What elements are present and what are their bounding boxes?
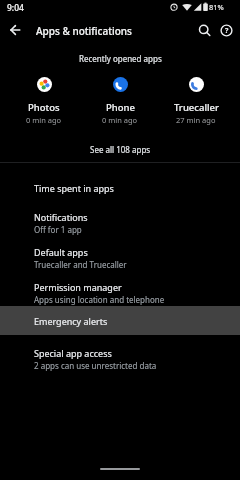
staticText: Notifications: [34, 211, 88, 223]
button[interactable]: Phone: [82, 77, 158, 125]
staticText: See all 108 apps: [90, 144, 151, 155]
button[interactable]: Notifications: [0, 205, 240, 240]
button[interactable]: Default apps: [0, 240, 240, 275]
button[interactable]: Truecaller: [158, 77, 234, 125]
staticText: 0 min ago: [26, 115, 62, 125]
staticText: Special app access: [34, 347, 112, 359]
staticText: Off for 1 app: [34, 224, 82, 235]
staticText: 0 min ago: [102, 115, 138, 125]
staticText: Default apps: [34, 246, 88, 258]
staticText: Phone: [106, 101, 135, 114]
staticText: Apps using location and telephone: [34, 294, 165, 305]
staticText: Truecaller and Truecaller: [34, 259, 127, 270]
staticText: Photos: [28, 101, 60, 114]
staticText: ?: [225, 26, 229, 36]
staticText: Emergency alerts: [34, 315, 108, 327]
button[interactable]: [194, 20, 216, 42]
staticText: 2 apps can use unrestricted data: [34, 360, 157, 371]
staticText: 81%: [209, 2, 224, 12]
staticText: Recently opened apps: [79, 53, 162, 64]
button[interactable]: Emergency alerts: [0, 306, 240, 335]
button[interactable]: Special app access: [0, 341, 240, 376]
button[interactable]: [0, 16, 30, 46]
staticText: Truecaller: [174, 101, 219, 114]
staticText: 9:04: [7, 2, 24, 14]
button[interactable]: Photos: [6, 77, 82, 125]
button[interactable]: ?: [216, 20, 238, 42]
button[interactable]: See all 108 apps: [0, 142, 240, 156]
staticText: Time spent in apps: [34, 182, 114, 194]
button[interactable]: Permission manager: [0, 275, 240, 310]
staticText: Apps & notifications: [36, 24, 132, 38]
staticText: 27 min ago: [176, 115, 216, 125]
button[interactable]: Time spent in apps: [0, 170, 240, 205]
staticText: Permission manager: [34, 281, 122, 293]
